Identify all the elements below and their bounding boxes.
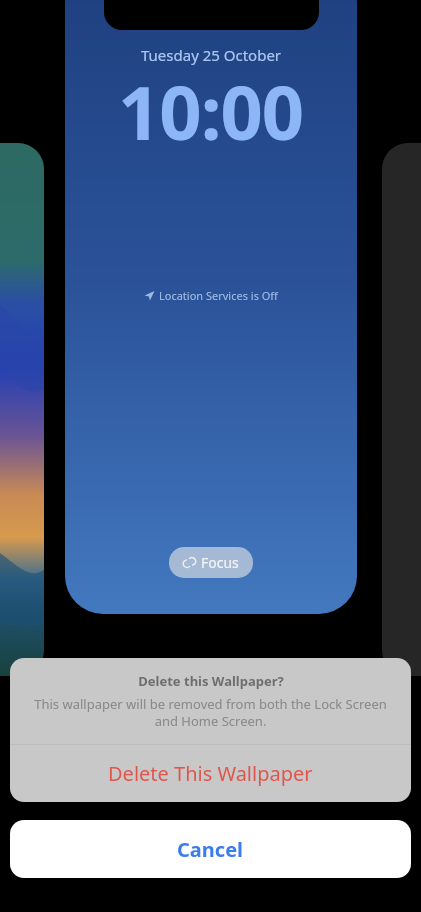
staticText: Delete this Wallpaper? [138, 672, 284, 690]
button[interactable] [382, 143, 421, 676]
staticText: Delete This Wallpaper [108, 760, 313, 787]
staticText: Focus [201, 553, 239, 572]
button[interactable]: Delete This Wallpaper [10, 745, 411, 802]
button[interactable]: Tuesday 25 October [65, 0, 357, 614]
staticText: This wallpaper will be removed from both… [26, 695, 395, 730]
staticText: 10:00 [118, 61, 304, 162]
button[interactable]: Cancel [10, 820, 411, 878]
staticText: Tuesday 25 October [141, 45, 282, 65]
button[interactable]: Focus [183, 553, 239, 572]
button[interactable]: Location Services is Off [144, 288, 278, 303]
staticText: Location Services is Off [159, 288, 278, 303]
staticText: Cancel [177, 836, 244, 863]
button[interactable] [0, 143, 44, 676]
